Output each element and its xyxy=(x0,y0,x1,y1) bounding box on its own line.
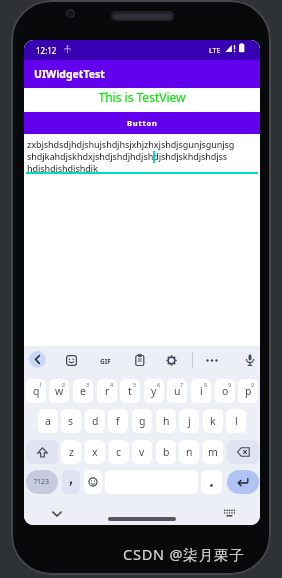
button[interactable] xyxy=(227,470,259,494)
staticText: 7 xyxy=(180,381,184,388)
button[interactable] xyxy=(108,515,176,523)
staticText: n xyxy=(186,445,193,459)
staticText: e xyxy=(80,384,86,398)
button[interactable]: i xyxy=(191,379,211,403)
staticText: CSDN @柒月栗子 xyxy=(123,544,245,564)
button[interactable]: Button xyxy=(24,112,260,134)
button[interactable]: t xyxy=(120,379,140,403)
staticText: 9 xyxy=(228,381,232,388)
staticText: x xyxy=(92,445,98,459)
button[interactable]: v xyxy=(132,440,152,464)
button[interactable]: k xyxy=(203,409,223,433)
staticText: f xyxy=(116,414,120,428)
button[interactable] xyxy=(84,470,102,494)
staticText: hdishdishdishdik xyxy=(27,162,98,174)
button[interactable]: n xyxy=(179,440,199,464)
button[interactable]: o xyxy=(215,379,235,403)
staticText: g xyxy=(139,414,146,428)
staticText: l xyxy=(235,414,238,428)
staticText: 2 xyxy=(62,381,66,388)
button[interactable]: c xyxy=(109,440,129,464)
button[interactable] xyxy=(221,506,238,520)
button[interactable] xyxy=(163,352,179,368)
staticText: z xyxy=(69,445,74,459)
staticText: 3 xyxy=(86,381,90,388)
staticText: w xyxy=(55,384,64,398)
button[interactable] xyxy=(62,470,80,494)
button[interactable] xyxy=(227,440,259,464)
staticText: Button xyxy=(127,118,158,128)
staticText: u xyxy=(174,384,181,398)
button[interactable]: s xyxy=(61,409,81,433)
staticText: r xyxy=(105,384,110,398)
button[interactable] xyxy=(24,134,260,174)
button[interactable]: h xyxy=(156,409,176,433)
staticText: 6 xyxy=(157,381,161,388)
button[interactable] xyxy=(26,440,58,464)
staticText: 8 xyxy=(204,381,208,388)
staticText: q xyxy=(33,384,40,398)
button[interactable] xyxy=(49,507,65,520)
button[interactable]: a xyxy=(38,409,58,433)
button[interactable]: m xyxy=(203,440,223,464)
button[interactable] xyxy=(63,352,79,368)
staticText: This is TestView xyxy=(24,89,260,105)
staticText: v xyxy=(139,445,145,459)
staticText: LTE xyxy=(209,46,221,56)
staticText: UIWidgetTest xyxy=(34,67,105,81)
button[interactable] xyxy=(204,352,220,368)
staticText: t xyxy=(128,384,132,398)
button[interactable]: w xyxy=(49,379,69,403)
staticText: b xyxy=(163,445,170,459)
staticText: 1 xyxy=(39,381,43,388)
staticText: m xyxy=(208,445,218,459)
button[interactable] xyxy=(201,470,222,494)
staticText: k xyxy=(210,414,216,428)
button[interactable]: r xyxy=(97,379,117,403)
staticText: c xyxy=(116,445,122,459)
staticText: zxbjshdsdjhdjshujshdjhsjxhjzhxjshdjsgunj… xyxy=(27,138,235,150)
button[interactable]: j xyxy=(179,409,199,433)
staticText: s xyxy=(68,414,74,428)
staticText: 5 xyxy=(133,381,137,388)
staticText: ?123 xyxy=(34,477,50,487)
button[interactable] xyxy=(29,351,46,368)
staticText: shdjkahdjskhdxjshdjshdjhdjshdjshdjskhdjs… xyxy=(27,150,227,162)
staticText: 0 xyxy=(251,381,255,388)
button[interactable]: p xyxy=(238,379,258,403)
button[interactable] xyxy=(98,352,114,368)
button[interactable]: l xyxy=(226,409,246,433)
staticText: y xyxy=(151,384,157,398)
staticText: 4 xyxy=(110,381,114,388)
button[interactable]: y xyxy=(144,379,164,403)
button[interactable]: q xyxy=(26,379,46,403)
staticText: a xyxy=(45,414,51,428)
staticText: d xyxy=(92,414,99,428)
button[interactable]: x xyxy=(85,440,105,464)
button[interactable]: g xyxy=(132,409,152,433)
button[interactable]: u xyxy=(167,379,187,403)
staticText: j xyxy=(188,414,191,428)
button[interactable]: d xyxy=(85,409,105,433)
button[interactable] xyxy=(242,352,258,368)
button[interactable]: f xyxy=(108,409,128,433)
staticText: GIF xyxy=(100,357,111,366)
button[interactable]: ?123 xyxy=(26,470,58,494)
button[interactable]: z xyxy=(61,440,81,464)
button[interactable] xyxy=(131,352,147,368)
staticText: o xyxy=(222,384,229,398)
staticText: i xyxy=(200,384,203,398)
button[interactable]: e xyxy=(73,379,93,403)
staticText: p xyxy=(245,384,252,398)
staticText: h xyxy=(163,414,170,428)
staticText: 12:12 xyxy=(36,45,57,56)
button[interactable]: b xyxy=(156,440,176,464)
